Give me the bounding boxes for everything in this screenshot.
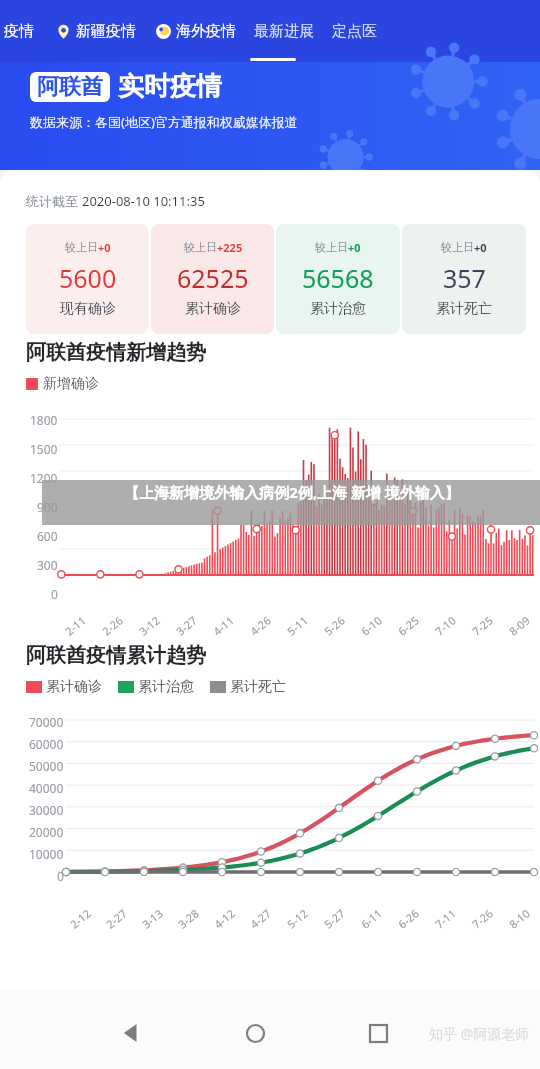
staticText: 5-26 [321,612,348,639]
staticText: 累计确诊 [185,300,241,318]
staticText: +0 [348,240,361,255]
staticText: 统计截至 [26,192,82,210]
staticText: 1200 [30,470,58,486]
button[interactable]: 疫情 [0,22,34,41]
button[interactable]: 较上日 [402,224,526,334]
staticText: 【上海新增境外输入病例2例,上海 新增 境外输入】 [44,482,540,502]
staticText: 较上日 [315,240,348,254]
staticText: 8-10 [506,905,533,932]
staticText: +0 [474,240,487,255]
staticText: 较上日 [184,240,217,254]
staticText: 较上日 [65,240,98,254]
button[interactable]: 海外疫情 [156,22,236,41]
staticText: 7-11 [432,905,459,932]
staticText: 2-11 [62,612,89,639]
staticText: 阿联酋疫情累计趋势 [26,643,206,668]
staticText: 40000 [29,780,64,796]
button[interactable]: 较上日 [151,224,274,334]
staticText: 5-12 [284,905,311,932]
staticText: 累计死亡 [230,678,286,696]
staticText: 累计治愈 [138,678,194,696]
staticText: 50000 [29,758,64,774]
staticText: 现有确诊 [60,300,116,318]
staticText: 357 [443,261,486,295]
staticText: 新增确诊 [43,375,99,393]
staticText: 3-27 [173,612,200,639]
staticText: 2-27 [103,905,130,932]
staticText: +225 [217,240,243,255]
staticText: 4-12 [211,905,238,932]
staticText: 5600 [59,261,117,295]
staticText: 600 [37,528,58,544]
staticText: 4-27 [247,905,274,932]
button[interactable]: Back [112,1013,152,1053]
button[interactable]: Recents [358,1013,398,1053]
staticText: 累计确诊 [46,678,102,696]
staticText: 70000 [29,714,64,730]
staticText: 20000 [29,824,64,840]
staticText: 5-11 [284,612,311,639]
staticText: 4-11 [210,612,237,639]
staticText: 2-12 [67,905,94,932]
staticText: 阿联酋疫情新增趋势 [26,340,206,365]
staticText: 6-11 [358,905,385,932]
staticText: 海外疫情 [176,22,236,41]
staticText: 300 [37,557,58,573]
staticText: 6-10 [358,612,385,639]
staticText: 新疆疫情 [76,22,136,41]
staticText: 2020-08-10 10:11:35 [82,192,205,210]
staticText: 6-26 [395,905,422,932]
staticText: 60000 [29,736,64,752]
button[interactable]: Home [235,1013,275,1053]
staticText: 疫情 [4,22,34,41]
staticText: 较上日 [441,240,474,254]
staticText: 5-27 [321,905,348,932]
staticText: 0 [57,868,64,884]
staticText: 1800 [30,412,58,428]
staticText: 3-13 [139,905,166,932]
button[interactable]: 定点医 [332,22,377,41]
staticText: 累计死亡 [436,300,492,318]
button[interactable]: 较上日 [276,224,400,334]
staticText: 阿联酋 [37,73,103,101]
staticText: 4-26 [247,612,274,639]
staticText: 3-28 [175,905,202,932]
button[interactable]: 最新进展 [254,22,314,41]
staticText: 实时疫情 [118,70,222,103]
staticText: 0 [51,586,58,602]
staticText: 56568 [302,261,374,295]
staticText: 7-25 [469,612,496,639]
staticText: 7-10 [432,612,459,639]
staticText: 2-26 [99,612,126,639]
staticText: 62525 [177,261,249,295]
staticText: 数据来源：各国(地区)官方通报和权威媒体报道 [30,113,298,131]
button[interactable]: 新疆疫情 [56,22,136,41]
staticText: 知乎 @阿源老师 [429,1024,530,1043]
staticText: 900 [37,499,58,515]
staticText: 10000 [29,846,64,862]
staticText: 1500 [30,441,58,457]
staticText: 6-25 [395,612,422,639]
staticText: +0 [98,240,111,255]
staticText: 8-09 [506,612,533,639]
button[interactable]: 较上日 [26,224,149,334]
staticText: 累计治愈 [310,300,366,318]
staticText: 30000 [29,802,64,818]
staticText: 7-26 [469,905,496,932]
staticText: 3-12 [136,612,163,639]
